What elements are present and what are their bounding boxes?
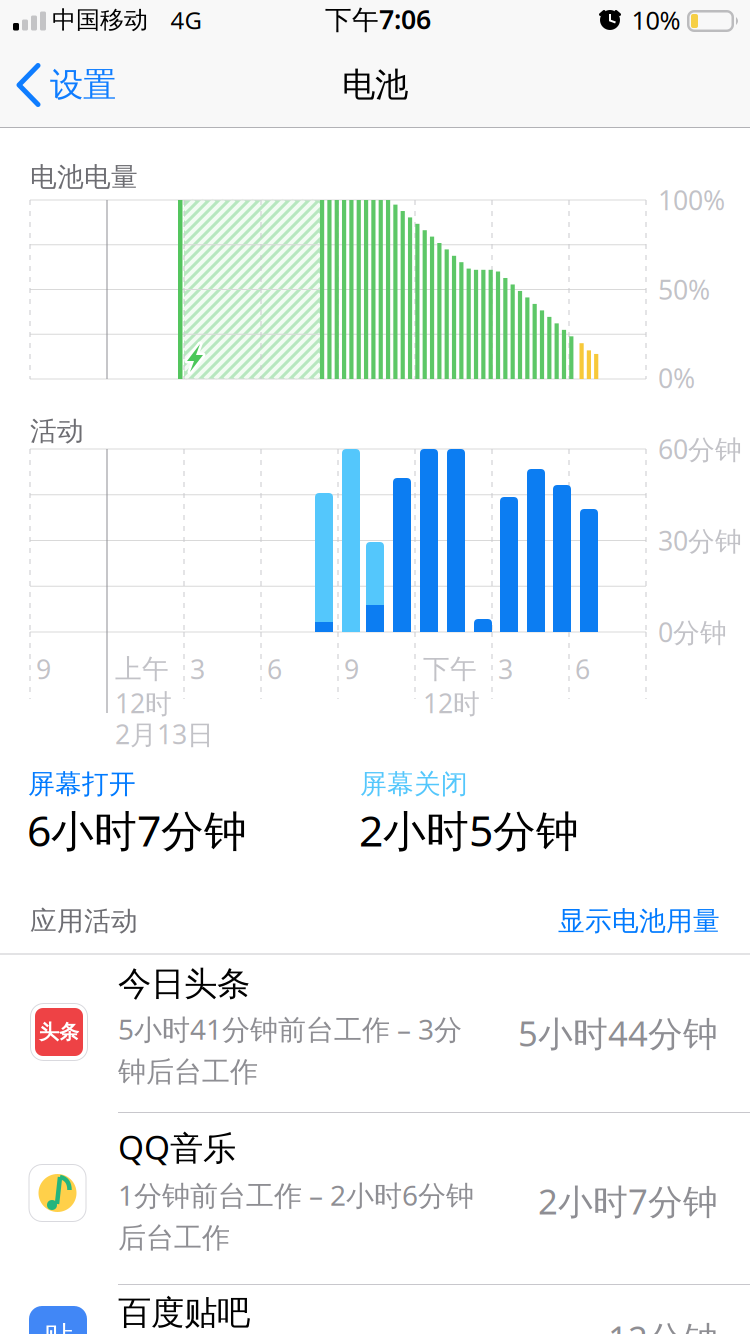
staticText: 2月13日 [115, 716, 214, 752]
button[interactable]: 设置 [16, 63, 116, 106]
button[interactable]: 头条 [0, 0, 750, 1334]
staticText: 4G [170, 4, 201, 36]
staticText: 显示电池用量 [558, 905, 720, 937]
staticText: 上午 [115, 653, 169, 685]
staticText: 30分钟 [658, 523, 742, 558]
staticText: 设置 [50, 64, 116, 105]
staticText: 10% [631, 3, 680, 37]
staticText: 下午7:06 [325, 1, 431, 37]
staticText: 6 [575, 651, 590, 687]
staticText: 活动 [30, 415, 84, 447]
staticText: 贴 [43, 1319, 72, 1334]
staticText: 12时 [423, 685, 480, 721]
button[interactable]: 显示电池用量 [420, 905, 720, 937]
staticText: 9 [36, 651, 51, 687]
staticText: 后台工作 [118, 1221, 230, 1255]
staticText: 50% [658, 272, 710, 307]
staticText: 屏幕打开 [28, 768, 136, 800]
staticText: 今日头条 [118, 963, 250, 1004]
staticText: 电池 [342, 64, 408, 105]
staticText: 5小时44分钟 [518, 1010, 718, 1056]
staticText: 应用活动 [30, 905, 138, 937]
staticText: 5小时41分钟前台工作 – 3分 [118, 1010, 462, 1048]
staticText: 60分钟 [658, 431, 742, 467]
staticText: 中国移动 [52, 5, 148, 35]
button[interactable]: 贴 [0, 0, 750, 1334]
staticText: 钟后台工作 [118, 1055, 258, 1089]
staticText: 12分钟 [608, 1315, 718, 1334]
staticText: 2小时7分钟 [538, 1178, 718, 1224]
staticText: 100% [658, 182, 725, 218]
staticText: 头条 [39, 1020, 79, 1044]
staticText: QQ音乐 [118, 1125, 236, 1169]
staticText: 1分钟前台工作 – 2小时6分钟 [118, 1176, 474, 1214]
staticText: 屏幕关闭 [360, 768, 468, 800]
staticText: 百度贴吧 [118, 1292, 250, 1333]
staticText: 3 [190, 651, 205, 687]
staticText: 0% [658, 360, 695, 396]
staticText: 9 [344, 651, 359, 687]
staticText: 6 [267, 651, 282, 687]
staticText: 3 [498, 651, 513, 687]
staticText: 2小时5分钟 [359, 802, 579, 858]
staticText: 0分钟 [658, 614, 727, 650]
button[interactable]: QQ音乐 [0, 0, 750, 1334]
staticText: 6小时7分钟 [27, 802, 247, 858]
staticText: 下午 [423, 653, 477, 685]
staticText: 12时 [115, 685, 172, 721]
staticText: 电池电量 [30, 161, 138, 193]
